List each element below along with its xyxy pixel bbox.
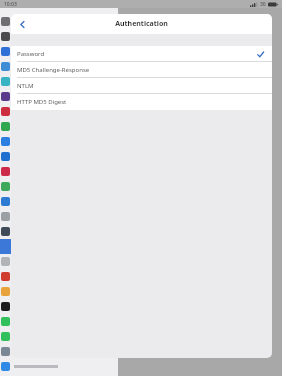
button[interactable]: Password xyxy=(11,46,272,62)
staticText: 10:03 xyxy=(4,1,17,8)
staticText: Authentication xyxy=(115,19,168,29)
button[interactable]: HTTP MD5 Digest xyxy=(11,94,272,110)
staticText: Password xyxy=(17,50,45,58)
button[interactable]: Back xyxy=(11,14,33,34)
button[interactable]: NTLM xyxy=(11,78,272,94)
button[interactable]: MD5 Challenge-Response xyxy=(11,62,272,78)
staticText: HTTP MD5 Digest xyxy=(17,98,67,106)
staticText: NTLM xyxy=(17,82,34,90)
staticText: MD5 Challenge-Response xyxy=(17,66,90,74)
staticText: 30 xyxy=(260,1,266,8)
